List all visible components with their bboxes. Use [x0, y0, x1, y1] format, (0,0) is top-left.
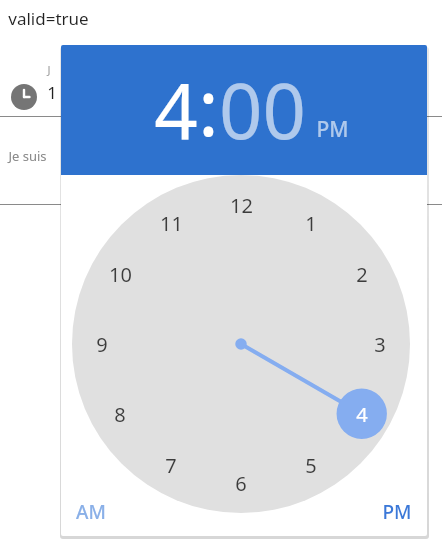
button[interactable]: 2	[342, 254, 382, 294]
staticText: J	[47, 62, 51, 77]
button[interactable]: 6	[221, 463, 261, 503]
staticText: Je suis	[8, 147, 47, 165]
button[interactable]: PM	[374, 495, 420, 529]
button[interactable]: 4	[154, 58, 198, 162]
staticText: 00	[219, 58, 306, 162]
staticText: 8	[114, 401, 126, 428]
button[interactable]: 3	[360, 324, 400, 364]
staticText: 4	[154, 58, 198, 162]
staticText: AM	[76, 499, 106, 525]
staticText: PM	[382, 499, 412, 525]
other: Clock dial, 4 o'clock	[72, 175, 410, 513]
button[interactable]: 00	[219, 58, 306, 162]
button[interactable]: 7	[151, 445, 191, 485]
button[interactable]: 9	[82, 324, 122, 364]
button[interactable]: 10	[100, 254, 140, 294]
button[interactable]: 4	[342, 394, 382, 434]
button[interactable]: 8	[100, 394, 140, 434]
staticText: 7	[165, 452, 177, 479]
staticText: 2	[356, 261, 368, 288]
button[interactable]: AM	[68, 495, 114, 529]
button[interactable]: 12	[221, 185, 261, 225]
staticText: 6	[235, 470, 247, 497]
staticText: 3	[374, 331, 386, 358]
staticText: 12	[230, 192, 253, 219]
staticText: 1	[47, 81, 57, 104]
button[interactable]: 5	[291, 445, 331, 485]
staticText: PM	[316, 115, 349, 144]
staticText: 1	[305, 210, 317, 237]
staticText: 9	[96, 331, 108, 358]
button[interactable]: PM	[316, 115, 349, 144]
staticText: 4	[356, 401, 368, 428]
staticText: valid=true	[8, 7, 89, 30]
staticText: :	[198, 55, 219, 159]
staticText: 5	[305, 452, 317, 479]
staticText: 11	[160, 210, 183, 237]
staticText: 10	[109, 261, 132, 288]
button[interactable]: 11	[151, 203, 191, 243]
button[interactable]: 1	[291, 203, 331, 243]
